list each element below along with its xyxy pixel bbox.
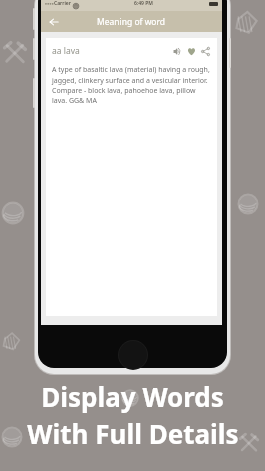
staticText: Meaning of word	[97, 16, 166, 28]
staticText: 6:49 PM	[134, 0, 153, 7]
staticText: With Full Details	[27, 416, 239, 451]
staticText: Display Words	[41, 379, 224, 414]
staticText: Carrier	[54, 0, 71, 7]
staticText: A type of basaltic lava (material) havin…	[52, 65, 211, 105]
button[interactable]: Pronounce	[171, 45, 183, 57]
staticText: aa lava	[52, 45, 80, 57]
button[interactable]: Favorite	[185, 45, 197, 57]
button[interactable]: Back	[46, 14, 62, 30]
button[interactable]: aa lava	[46, 38, 217, 316]
button[interactable]: Share	[199, 45, 211, 57]
